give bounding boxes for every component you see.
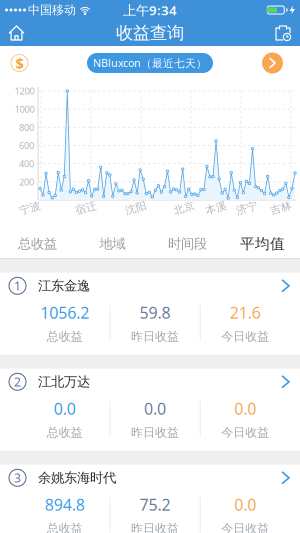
staticText: 894.8: [45, 494, 85, 515]
staticText: 59.8: [139, 302, 170, 323]
staticText: 2: [14, 374, 21, 390]
staticText: 总收益: [18, 236, 57, 252]
staticText: 600: [19, 139, 34, 152]
staticText: 余姚东海时代: [38, 470, 116, 486]
staticText: 400: [19, 157, 34, 170]
staticText: 北京: [173, 201, 195, 214]
staticText: 0.0: [144, 398, 166, 419]
button[interactable]: [276, 26, 300, 40]
staticText: 今日收益: [221, 521, 269, 533]
staticText: 1: [14, 278, 21, 294]
staticText: 宿迁: [75, 201, 97, 214]
staticText: NBluxcon（最近七天）: [93, 56, 207, 70]
staticText: 昨日收益: [131, 329, 179, 344]
staticText: 济宁: [236, 201, 258, 214]
staticText: 宁波: [19, 201, 41, 214]
staticText: 江北万达: [38, 374, 90, 390]
staticText: 今日收益: [221, 425, 269, 440]
staticText: 地域: [99, 236, 125, 252]
button[interactable]: 3: [0, 465, 300, 533]
button[interactable]: 时间段: [150, 228, 225, 262]
staticText: 0.0: [54, 398, 76, 419]
staticText: 平均值: [240, 235, 285, 253]
button[interactable]: [0, 26, 24, 40]
staticText: 1056.2: [40, 302, 89, 323]
button[interactable]: 1: [0, 273, 300, 355]
staticText: 时间段: [168, 236, 207, 252]
staticText: 0.0: [234, 494, 256, 515]
staticText: 昨日收益: [131, 425, 179, 440]
staticText: 今日收益: [221, 329, 269, 344]
button[interactable]: 平均值: [225, 227, 300, 263]
staticText: 上午9:34: [123, 1, 177, 19]
button[interactable]: 地域: [75, 228, 150, 262]
staticText: 总收益: [47, 329, 83, 344]
staticText: 3: [14, 470, 21, 486]
staticText: $: [15, 53, 23, 73]
button[interactable]: NBluxcon（最近七天）: [87, 53, 213, 73]
staticText: 收益查询: [116, 22, 184, 44]
staticText: 800: [19, 121, 34, 133]
staticText: 吉林: [270, 201, 292, 214]
staticText: 沈阳: [125, 201, 147, 214]
staticText: 75.2: [139, 494, 170, 515]
staticText: 200: [19, 176, 34, 188]
staticText: 本溪: [205, 201, 227, 214]
button[interactable]: 2: [0, 369, 300, 451]
staticText: 昨日收益: [131, 521, 179, 533]
staticText: 总收益: [47, 425, 83, 440]
staticText: 1000: [14, 103, 34, 115]
staticText: 0.0: [234, 398, 256, 419]
staticText: 1200: [14, 85, 34, 97]
button[interactable]: [262, 52, 300, 73]
staticText: 江东金逸: [38, 278, 90, 294]
staticText: 21.6: [230, 302, 261, 323]
staticText: 中国移动: [28, 3, 76, 17]
button[interactable]: 总收益: [0, 228, 75, 262]
staticText: 总收益: [47, 521, 83, 533]
